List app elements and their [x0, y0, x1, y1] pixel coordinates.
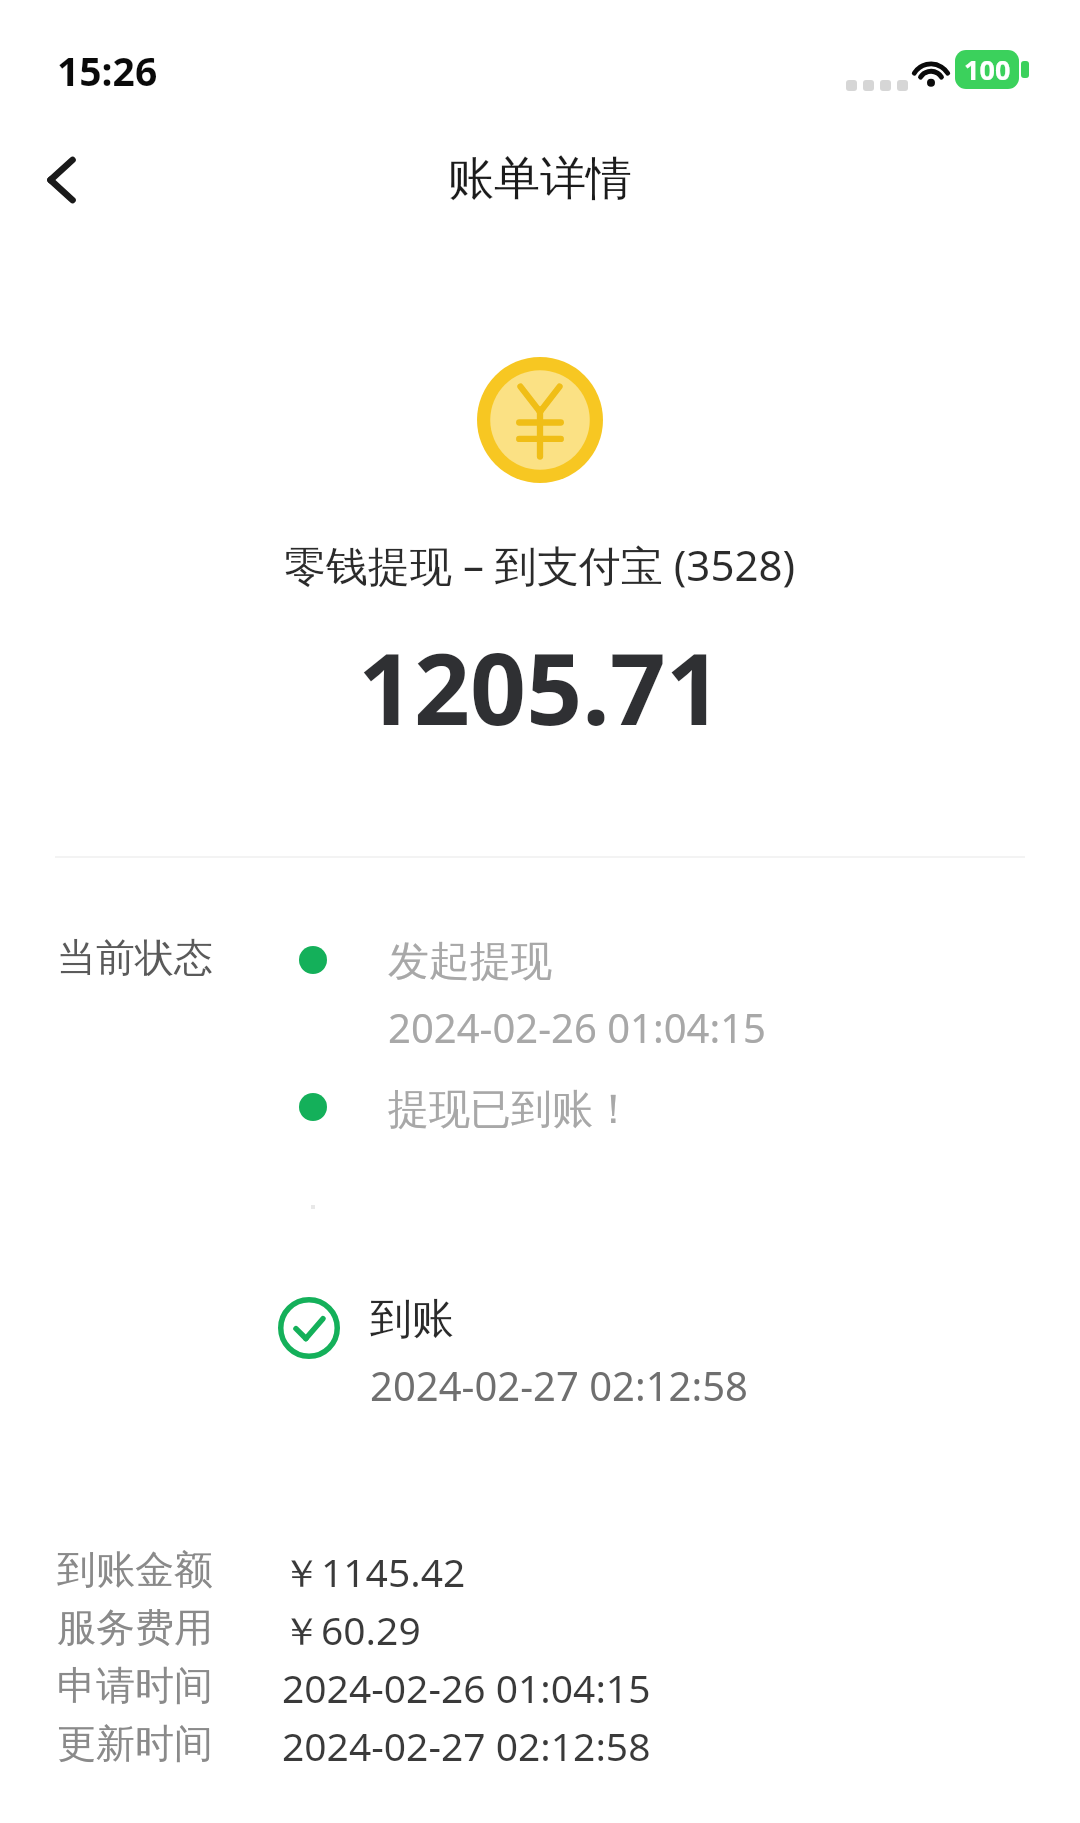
staticText: 申请时间 [57, 1661, 213, 1710]
staticText: 2024-02-26 01:04:15 [388, 1000, 766, 1054]
staticText: 账单详情 [448, 150, 632, 208]
staticText: 2024-02-27 02:12:58 [370, 1358, 748, 1412]
staticText: ￥60.29 [282, 1603, 421, 1656]
staticText: 提现已到账！ [388, 1084, 634, 1136]
staticText: 15:26 [57, 44, 158, 97]
staticText: 服务费用 [57, 1603, 213, 1652]
staticText: 到账 [370, 1293, 454, 1346]
staticText: ￥1145.42 [282, 1545, 466, 1598]
staticText: 1205.71 [358, 620, 722, 753]
staticText: 2024-02-27 02:12:58 [282, 1719, 651, 1772]
staticText: 2024-02-26 01:04:15 [282, 1661, 651, 1714]
staticText: 到账金额 [57, 1545, 213, 1594]
staticText: 当前状态 [57, 933, 213, 982]
staticText: 100 [964, 51, 1011, 88]
staticText: 发起提现 [388, 936, 552, 988]
staticText: 零钱提现 – 到支付宝 (3528) [284, 536, 796, 593]
button[interactable]: Back [12, 130, 112, 230]
staticText: 更新时间 [57, 1719, 213, 1768]
